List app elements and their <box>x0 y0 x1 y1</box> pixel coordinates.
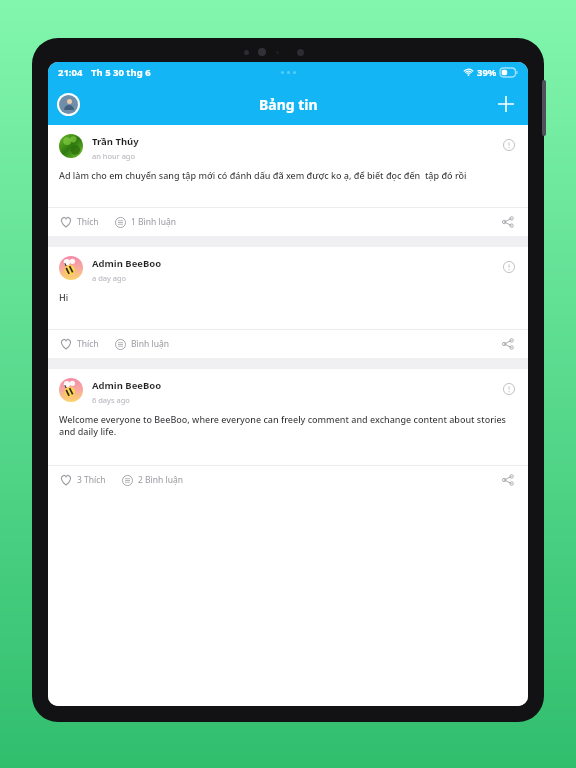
button[interactable]: Share <box>498 470 518 490</box>
staticText: Bảng tin <box>259 95 318 114</box>
button[interactable]: Share <box>498 212 518 232</box>
button[interactable]: Thích <box>59 212 100 232</box>
button[interactable]: Report post <box>498 378 520 400</box>
staticText: Admin BeeBoo <box>92 257 162 270</box>
staticText: 21:04 <box>58 66 83 79</box>
staticText: 2 Bình luận <box>138 474 183 486</box>
button[interactable]: 1 Bình luận <box>114 212 177 232</box>
staticText: 3 Thích <box>77 474 106 486</box>
staticText: Ad làm cho em chuyển sang tập mới có đán… <box>59 169 467 181</box>
button[interactable]: Admin BeeBoo <box>48 369 528 494</box>
staticText: Trần Thúy <box>92 135 139 148</box>
staticText: 1 Bình luận <box>131 216 176 228</box>
button[interactable]: Report post <box>498 256 520 278</box>
button[interactable]: Share <box>498 334 518 354</box>
staticText: Hi <box>59 291 69 303</box>
staticText: 39% <box>477 66 497 79</box>
button[interactable]: Add post <box>489 87 523 121</box>
staticText: Thích <box>77 216 99 228</box>
button[interactable]: Bình luận <box>114 334 170 354</box>
button[interactable]: 2 Bình luận <box>121 470 184 490</box>
button[interactable]: Admin BeeBoo <box>48 247 528 358</box>
staticText: Admin BeeBoo <box>92 379 162 392</box>
staticText: Thích <box>77 338 99 350</box>
button[interactable]: Profile <box>55 91 81 117</box>
staticText: a day ago <box>92 273 127 283</box>
staticText: Th 5 30 thg 6 <box>91 66 151 79</box>
staticText: an hour ago <box>92 151 136 161</box>
button[interactable]: 3 Thích <box>59 470 107 490</box>
button[interactable]: Report post <box>498 134 520 156</box>
button[interactable]: Trần Thúy <box>48 125 528 236</box>
button[interactable]: Thích <box>59 334 100 354</box>
staticText: Bình luận <box>131 338 169 350</box>
staticText: Welcome everyone to BeeBoo, where everyo… <box>59 413 517 438</box>
staticText: 6 days ago <box>92 395 130 405</box>
